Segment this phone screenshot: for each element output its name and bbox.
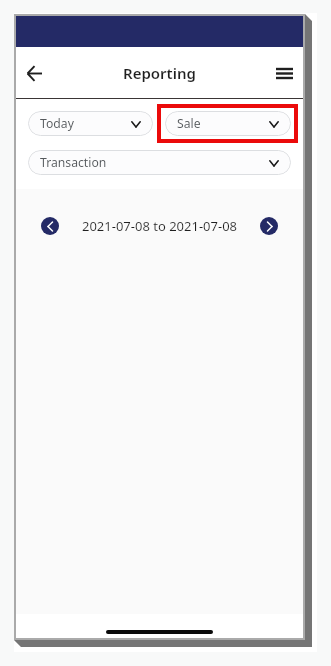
staticText: 2021-07-08 to 2021-07-08 [59, 217, 260, 235]
staticText: Transaction [40, 154, 107, 171]
button[interactable]: Sale [165, 111, 291, 136]
button[interactable]: Back [16, 55, 53, 92]
button[interactable]: Transaction [28, 150, 291, 175]
staticText: Today [40, 115, 74, 132]
button[interactable]: Menu [266, 55, 303, 92]
button[interactable]: Previous period [41, 217, 59, 235]
button[interactable]: Next period [260, 217, 278, 235]
staticText: Sale [177, 115, 201, 132]
staticText: Reporting [123, 63, 196, 83]
button[interactable]: Today [28, 111, 153, 136]
